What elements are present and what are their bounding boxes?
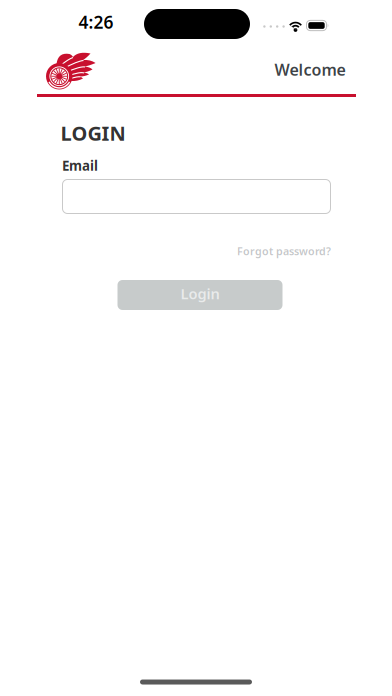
staticText: Forgot password? <box>237 244 331 258</box>
button[interactable]: Login <box>117 280 282 310</box>
staticText: Welcome <box>274 59 345 80</box>
button[interactable]: Forgot password? <box>237 244 331 258</box>
button[interactable]: Email <box>62 179 330 213</box>
staticText: 4:26 <box>78 10 113 33</box>
staticText: LOGIN <box>60 120 125 146</box>
staticText: Email <box>62 157 98 174</box>
staticText: Login <box>180 284 219 303</box>
